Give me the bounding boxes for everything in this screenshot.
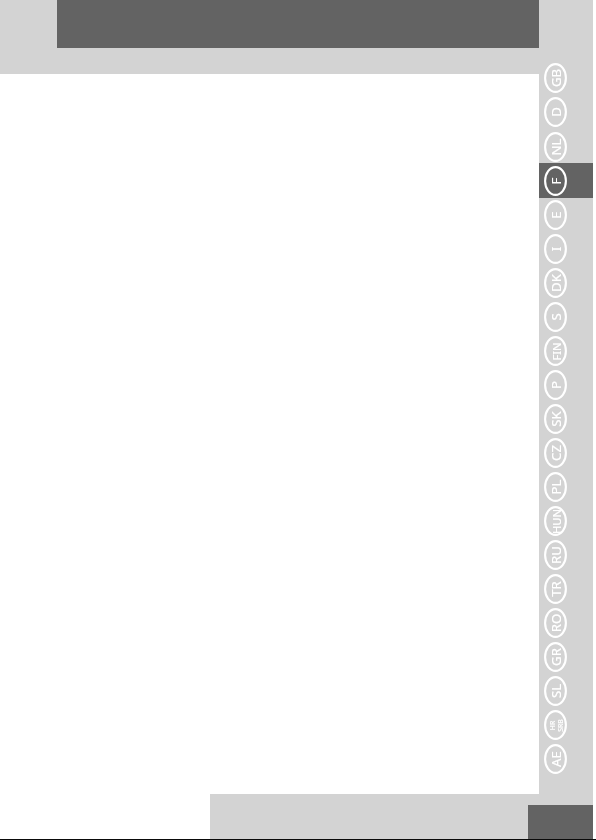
staticText: SL (547, 669, 565, 713)
staticText: HUN (548, 499, 563, 543)
staticText: NL (547, 125, 565, 169)
button[interactable]: Language RO (539, 605, 596, 640)
button[interactable]: Language DK (539, 265, 596, 300)
button[interactable]: Language E (539, 197, 596, 232)
staticText: D (547, 90, 565, 134)
button[interactable]: Language SL (539, 673, 596, 708)
staticText: I (547, 227, 565, 271)
staticText: GB (547, 56, 565, 100)
staticText: HR SRB (547, 703, 564, 747)
staticText: FIN (548, 329, 563, 373)
button[interactable]: Language TR (539, 571, 596, 606)
staticText: S (547, 295, 565, 339)
button[interactable]: Language FIN (539, 333, 596, 368)
button[interactable]: Language NL (539, 129, 596, 164)
button[interactable]: Language CZ (539, 435, 596, 470)
button[interactable]: Language HR/SRB (539, 707, 596, 742)
button[interactable]: Language HUN (539, 503, 596, 538)
button[interactable]: Language S (539, 299, 596, 334)
button[interactable]: Language F (539, 163, 596, 198)
button[interactable]: Language P (539, 367, 596, 402)
staticText: CZ (547, 431, 565, 475)
staticText: DK (547, 261, 565, 305)
staticText: TR (547, 567, 565, 611)
button[interactable]: Language GR (539, 639, 596, 674)
staticText: AE (547, 737, 565, 781)
staticText: F (547, 159, 565, 203)
button[interactable]: Language RU (539, 537, 596, 572)
staticText: P (547, 363, 565, 407)
staticText: E (547, 193, 565, 237)
staticText: GR (547, 635, 565, 679)
button[interactable]: Language AE (539, 741, 596, 776)
staticText: RU (547, 533, 565, 577)
button[interactable]: Language I (539, 231, 596, 266)
staticText: PL (547, 465, 565, 509)
button[interactable]: Language D (539, 94, 596, 129)
button[interactable]: Language SK (539, 401, 596, 436)
button[interactable]: Page number (528, 805, 596, 839)
button[interactable]: Language GB (539, 60, 596, 95)
staticText: SK (547, 397, 565, 441)
button[interactable]: Language PL (539, 469, 596, 504)
staticText: RO (547, 601, 565, 645)
